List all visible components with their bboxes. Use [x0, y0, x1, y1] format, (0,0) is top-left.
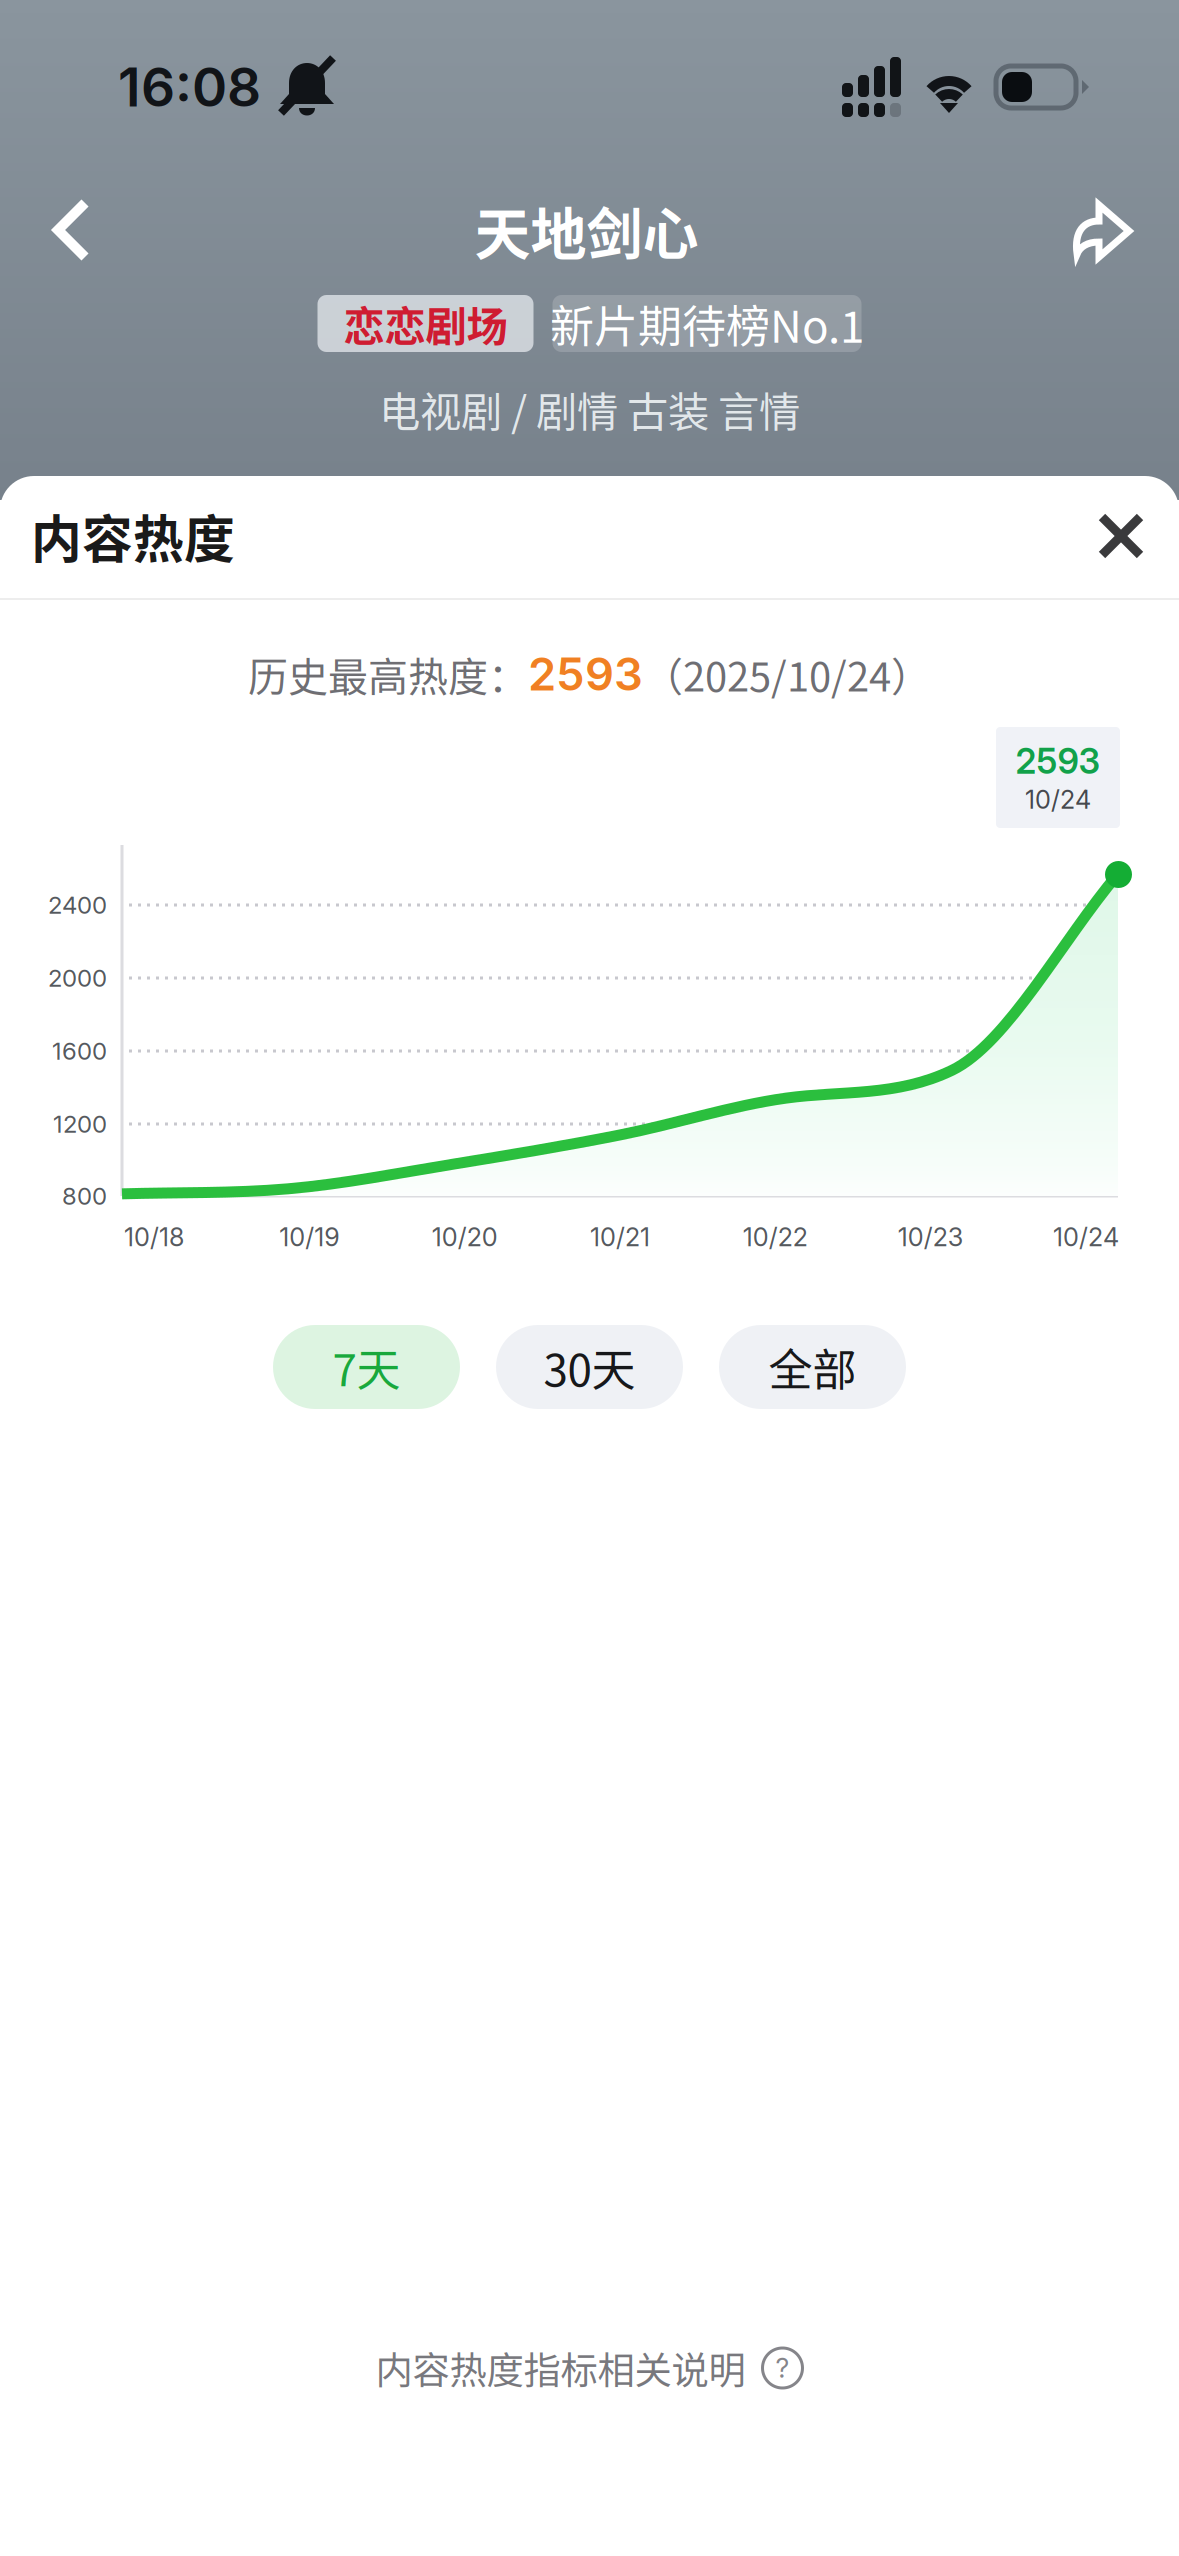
button[interactable]: Close	[1073, 488, 1169, 584]
staticText: 全部	[768, 1335, 856, 1399]
button[interactable]: 7天	[273, 1325, 460, 1409]
staticText: 1200	[53, 1109, 107, 1138]
staticText: 内容热度指标相关说明	[375, 2341, 745, 2395]
staticText: （2025/10/24）	[643, 645, 931, 703]
staticText: 30天	[543, 1335, 635, 1399]
staticText: ?	[775, 2352, 789, 2384]
button[interactable]: Share	[1037, 170, 1167, 290]
button[interactable]: 内容热度指标相关说明	[0, 2332, 1179, 2404]
staticText: 10/20	[432, 1222, 498, 1252]
staticText: 电视剧 / 剧情 古装 言情	[379, 379, 800, 439]
staticText: 2593	[528, 647, 643, 701]
staticText: 10/23	[898, 1222, 964, 1252]
staticText: 7天	[332, 1335, 400, 1399]
staticText: 内容热度	[31, 499, 235, 573]
button[interactable]: 30天	[496, 1325, 683, 1409]
staticText: 10/24	[1053, 1222, 1119, 1252]
button[interactable]: 全部	[719, 1325, 906, 1409]
staticText: 16:08	[118, 55, 261, 119]
staticText: 天地剑心	[474, 189, 698, 271]
staticText: 恋恋剧场	[343, 294, 507, 353]
button[interactable]: Back	[6, 170, 136, 290]
staticText: 10/18	[124, 1222, 184, 1252]
staticText: 10/21	[590, 1222, 650, 1252]
staticText: 800	[62, 1181, 107, 1210]
staticText: 10/19	[279, 1222, 339, 1252]
staticText: 2593	[1015, 740, 1100, 782]
staticText: 2000	[48, 963, 107, 992]
staticText: 2400	[48, 890, 107, 919]
staticText: 历史最高热度：	[248, 645, 528, 703]
staticText: 1600	[52, 1036, 107, 1065]
staticText: 10/24	[1025, 784, 1091, 815]
staticText: 新片期待榜No.1	[550, 292, 864, 355]
staticText: 10/22	[743, 1222, 808, 1252]
